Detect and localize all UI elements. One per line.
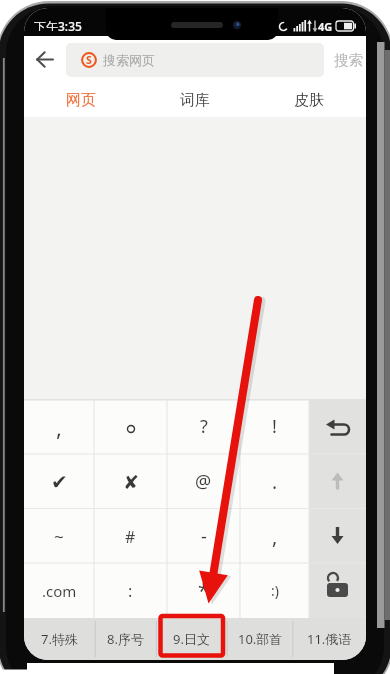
button[interactable]: 9.日文: [156, 618, 227, 660]
staticText: 搜索: [334, 51, 363, 69]
staticText: @: [195, 469, 212, 494]
staticText: ✔: [51, 470, 68, 493]
staticText: .com: [42, 581, 77, 601]
button[interactable]: !: [240, 399, 309, 454]
button[interactable]: [309, 509, 366, 564]
button[interactable]: .com: [24, 563, 94, 618]
staticText: 词库: [180, 91, 210, 110]
button[interactable]: 10.部首: [227, 618, 293, 660]
button[interactable]: 网页: [24, 83, 138, 117]
staticText: ,: [56, 412, 62, 442]
button[interactable]: :: [94, 563, 167, 618]
staticText: 9.日文: [173, 630, 210, 648]
button[interactable]: ?: [167, 399, 240, 454]
staticText: 搜索网页: [103, 52, 155, 68]
staticText: ✘: [123, 471, 139, 493]
button[interactable]: [309, 563, 366, 618]
button[interactable]: *: [167, 563, 240, 618]
button[interactable]: [66, 43, 324, 77]
button[interactable]: 7.特殊: [24, 618, 95, 660]
staticText: 8.序号: [107, 630, 144, 648]
staticText: #: [125, 526, 136, 548]
staticText: S: [86, 53, 92, 67]
button[interactable]: .: [240, 454, 309, 509]
staticText: !: [272, 414, 277, 439]
button[interactable]: ,: [240, 509, 309, 564]
staticText: ,: [272, 523, 278, 550]
button[interactable]: ✘: [94, 454, 167, 509]
staticText: 网页: [66, 91, 96, 110]
button[interactable]: [94, 399, 167, 454]
staticText: 4G: [318, 19, 333, 34]
button[interactable]: @: [167, 454, 240, 509]
staticText: -: [201, 524, 207, 549]
button[interactable]: 搜索: [330, 50, 366, 70]
button[interactable]: ~: [24, 509, 94, 564]
button[interactable]: 8.序号: [95, 618, 156, 660]
button[interactable]: [309, 399, 366, 454]
button[interactable]: 11.俄语: [293, 618, 366, 660]
button[interactable]: [28, 44, 64, 75]
button[interactable]: 词库: [138, 83, 252, 117]
staticText: 7.特殊: [41, 630, 78, 648]
button[interactable]: ,: [24, 399, 94, 454]
staticText: ?: [200, 414, 208, 439]
staticText: 皮肤: [294, 91, 324, 110]
button[interactable]: :): [240, 563, 309, 618]
button[interactable]: -: [167, 509, 240, 564]
staticText: 下午3:35: [34, 18, 82, 31]
staticText: :: [128, 580, 133, 602]
staticText: 11.俄语: [307, 630, 352, 648]
staticText: :): [271, 581, 279, 600]
button[interactable]: #: [94, 509, 167, 564]
staticText: *: [198, 577, 210, 604]
button[interactable]: ✔: [24, 454, 94, 509]
staticText: 10.部首: [238, 630, 283, 648]
button[interactable]: [309, 454, 366, 509]
staticText: .: [272, 469, 278, 495]
staticText: ~: [54, 525, 64, 548]
button[interactable]: 皮肤: [252, 83, 366, 117]
